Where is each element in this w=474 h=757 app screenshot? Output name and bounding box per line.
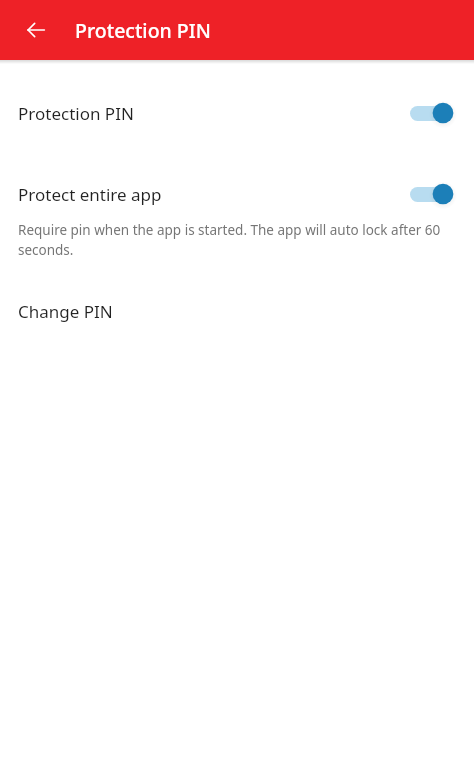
staticText: Protection PIN — [18, 102, 408, 125]
button[interactable]: Change PIN — [0, 287, 474, 335]
button[interactable]: Protect entire app — [0, 167, 474, 221]
staticText: Protect entire app — [18, 183, 408, 206]
staticText: Protection PIN — [75, 17, 211, 44]
staticText: Change PIN — [18, 300, 113, 323]
button[interactable]: Back — [14, 8, 58, 52]
button[interactable]: Protection PIN — [0, 86, 474, 140]
staticText: Require pin when the app is started. The… — [18, 221, 458, 259]
